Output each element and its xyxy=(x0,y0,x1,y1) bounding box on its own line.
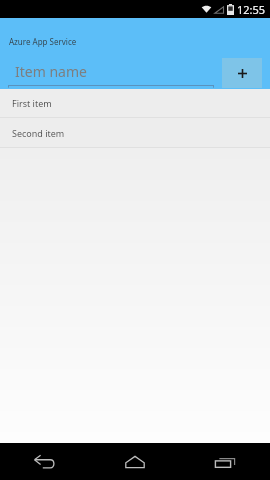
button[interactable]: First item xyxy=(0,89,270,117)
button[interactable]: Back xyxy=(0,443,90,480)
button[interactable]: Recent apps xyxy=(180,443,270,480)
button[interactable]: Item name xyxy=(8,62,214,88)
staticText: First item xyxy=(12,97,52,109)
staticText: Azure App Service xyxy=(9,36,77,47)
staticText: Item name xyxy=(15,62,87,81)
staticText: 12:55 xyxy=(237,2,266,17)
staticText: Second item xyxy=(12,127,65,139)
button[interactable]: Home xyxy=(90,443,180,480)
button[interactable]: Second item xyxy=(0,118,270,147)
button[interactable]: Add item xyxy=(222,58,262,88)
